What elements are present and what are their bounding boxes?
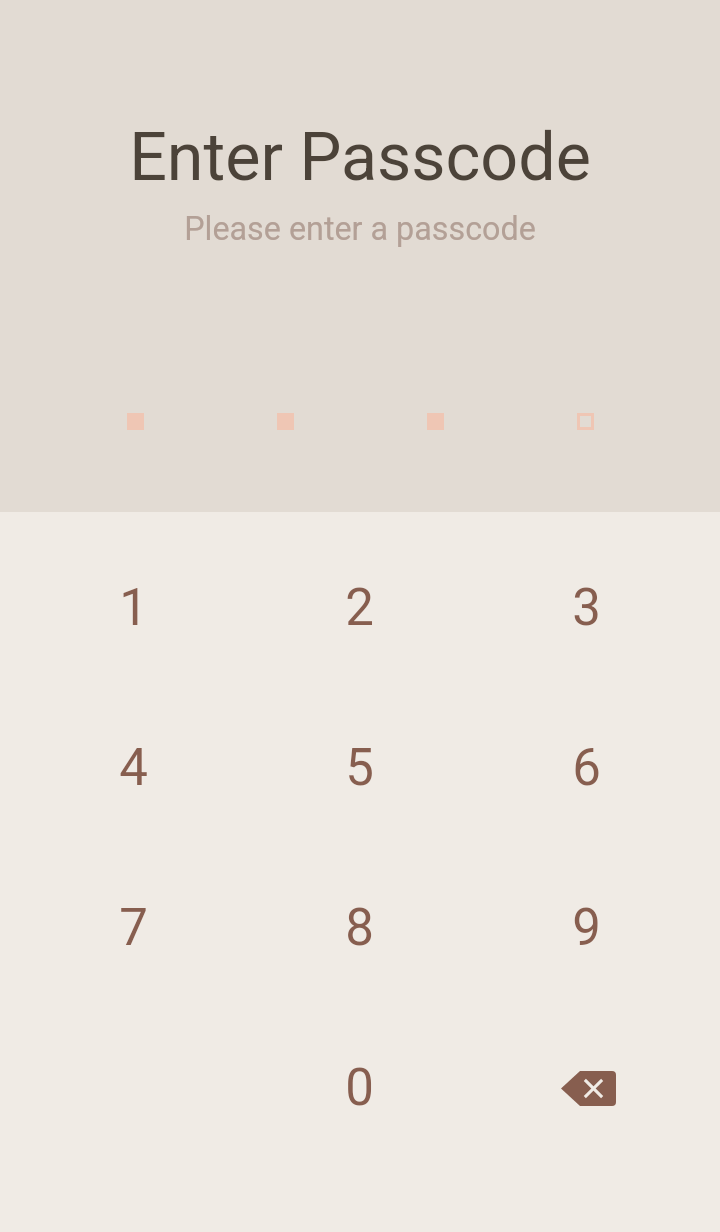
- button[interactable]: 1: [20, 528, 246, 688]
- staticText: Enter Passcode: [129, 118, 591, 196]
- button[interactable]: 4: [20, 688, 246, 848]
- button[interactable]: 2: [246, 528, 473, 688]
- staticText: 8: [345, 898, 374, 958]
- staticText: 6: [572, 738, 601, 798]
- staticText: 3: [572, 578, 601, 638]
- button[interactable]: 7: [20, 848, 246, 1008]
- button[interactable]: 8: [246, 848, 473, 1008]
- staticText: Please enter a passcode: [184, 210, 536, 248]
- staticText: 7: [119, 898, 148, 958]
- button[interactable]: 9: [473, 848, 700, 1008]
- button[interactable]: Backspace: [473, 1008, 700, 1168]
- button[interactable]: 5: [246, 688, 473, 848]
- button[interactable]: 3: [473, 528, 700, 688]
- button[interactable]: 6: [473, 688, 700, 848]
- staticText: 4: [119, 738, 148, 798]
- staticText: 9: [572, 898, 601, 958]
- staticText: 1: [119, 578, 148, 638]
- staticText: 5: [345, 738, 374, 798]
- staticText: 2: [345, 578, 374, 638]
- button[interactable]: 0: [246, 1008, 473, 1168]
- staticText: 0: [345, 1058, 374, 1118]
